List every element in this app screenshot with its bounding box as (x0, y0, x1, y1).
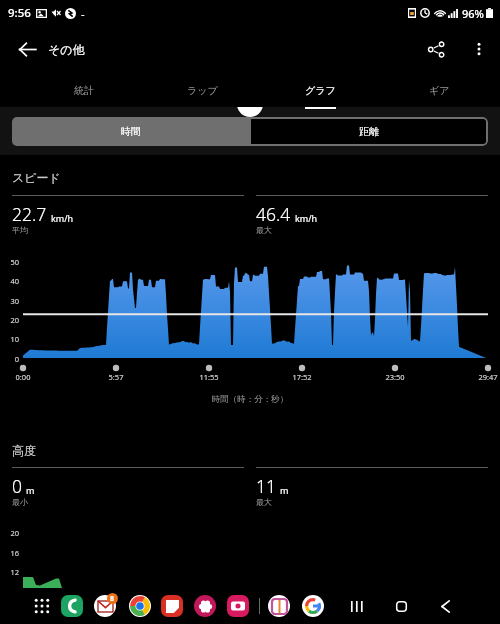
staticText: 10 (0, 334, 19, 344)
staticText: 46.4 (256, 202, 291, 226)
button[interactable]: Share (414, 28, 458, 70)
staticText: 30 (0, 296, 19, 306)
staticText: 29:47 (468, 372, 500, 382)
staticText: 12 (0, 567, 19, 577)
button[interactable]: Phone (61, 595, 83, 617)
staticText: 最小 (12, 497, 28, 507)
button[interactable]: Photos (194, 595, 216, 617)
button[interactable]: Keep (161, 595, 183, 617)
button[interactable]: 統計 (25, 70, 143, 109)
staticText: 平均 (12, 225, 28, 235)
button[interactable]: ラップ (143, 70, 261, 109)
button[interactable]: Gallery (268, 595, 290, 617)
staticText: 16 (0, 548, 19, 558)
button[interactable]: Home (391, 596, 411, 616)
staticText: 最大 (256, 497, 272, 507)
staticText: 22.7 (12, 202, 47, 226)
staticText: 統計 (74, 84, 94, 97)
staticText: 20 (0, 528, 19, 538)
button[interactable]: Chrome (129, 595, 151, 617)
staticText: 0:00 (3, 372, 43, 382)
staticText: 40 (0, 276, 19, 286)
button[interactable]: グラフ (261, 70, 380, 109)
staticText: 50 (0, 257, 19, 267)
staticText: 11 (256, 474, 276, 498)
button[interactable]: Recents (347, 596, 367, 616)
staticText: 時間（時：分：秒） (0, 394, 500, 405)
button[interactable]: Back (435, 596, 455, 616)
button[interactable]: Back (0, 28, 54, 70)
staticText: ラップ (187, 84, 218, 97)
button[interactable]: More options (458, 28, 500, 70)
staticText: km/h (295, 212, 318, 224)
staticText: m (280, 484, 289, 496)
staticText: km/h (51, 212, 74, 224)
staticText: 96% (462, 6, 484, 21)
staticText: その他 (48, 42, 85, 57)
staticText: 11:55 (189, 372, 229, 382)
staticText: 0 (12, 474, 22, 498)
button[interactable]: Gmail (94, 595, 116, 617)
button[interactable]: Google (302, 595, 324, 617)
button[interactable]: Camera (227, 595, 249, 617)
staticText: スピード (12, 170, 61, 185)
staticText: 20 (0, 315, 19, 325)
staticText: グラフ (305, 84, 336, 97)
staticText: 9:56 (8, 5, 31, 21)
staticText: 高度 (12, 443, 36, 458)
staticText: ギア (429, 84, 450, 97)
staticText: 5:57 (96, 372, 136, 382)
staticText: 最大 (256, 225, 272, 235)
staticText: 17:52 (282, 372, 322, 382)
staticText: 距離 (359, 125, 379, 138)
staticText: 23:50 (375, 372, 415, 382)
button[interactable]: ギア (380, 70, 499, 109)
button[interactable]: 距離 (249, 117, 488, 146)
staticText: - (81, 6, 85, 21)
staticText: m (26, 484, 35, 496)
staticText: 0 (0, 354, 19, 364)
staticText: 8 (110, 594, 115, 604)
staticText: 時間 (121, 125, 141, 138)
button[interactable]: Apps (33, 597, 52, 616)
button[interactable]: 時間 (12, 117, 249, 146)
